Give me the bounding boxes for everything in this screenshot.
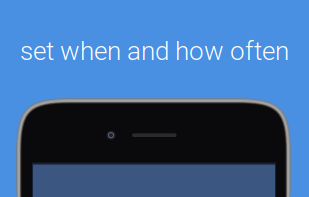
staticText: set when and how often bbox=[20, 36, 289, 66]
